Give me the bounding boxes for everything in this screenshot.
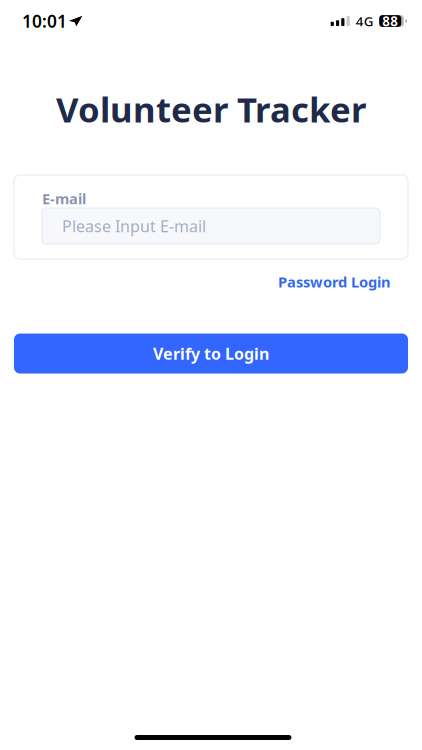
staticText: Please Input E-mail — [62, 215, 206, 237]
staticText: Volunteer Tracker — [56, 86, 366, 132]
button[interactable]: Password Login — [278, 272, 391, 291]
button[interactable]: E-mail, Please Input E-mail — [42, 208, 380, 244]
staticText: 10:01 — [22, 9, 67, 32]
staticText: 88 — [382, 12, 398, 30]
staticText: E-mail — [42, 189, 86, 208]
staticText: Password Login — [278, 272, 391, 291]
staticText: 4G — [356, 12, 374, 30]
staticText: Verify to Login — [153, 343, 269, 364]
button[interactable]: Verify to Login — [14, 333, 408, 373]
